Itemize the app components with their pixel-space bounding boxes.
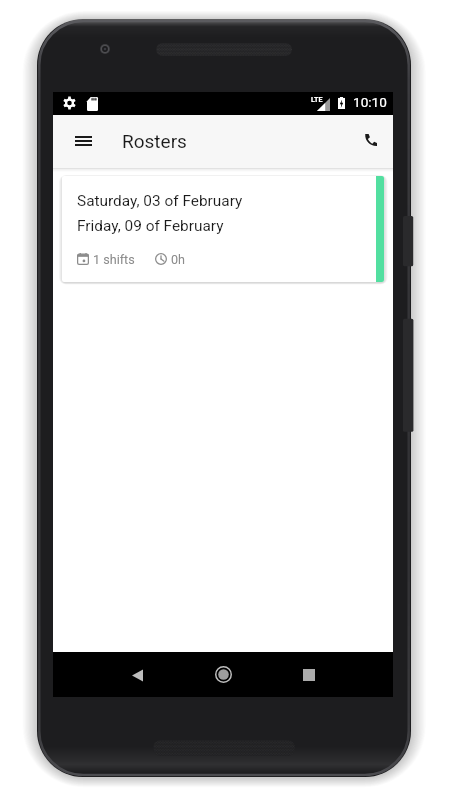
staticText: LTE [311, 95, 323, 103]
button[interactable]: Back [121, 659, 154, 692]
staticText: Friday, 09 of February [77, 217, 224, 235]
staticText: 1 shifts [93, 252, 135, 267]
staticText: 0h [171, 252, 186, 267]
staticText: Rosters [122, 130, 187, 152]
button[interactable]: Recent apps [292, 658, 325, 691]
button[interactable]: Saturday, 03 of February [62, 176, 384, 282]
button[interactable]: Open navigation menu [67, 124, 100, 157]
button[interactable]: Home [207, 658, 240, 691]
button[interactable]: Call [354, 123, 387, 156]
staticText: 10:10 [353, 94, 387, 110]
staticText: Saturday, 03 of February [77, 192, 243, 210]
